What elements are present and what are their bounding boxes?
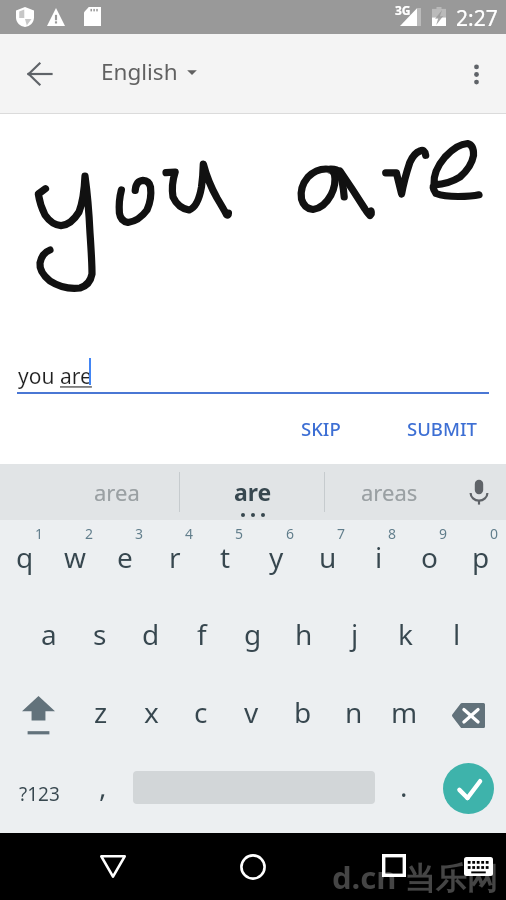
staticText: , (99, 767, 107, 805)
staticText: v (244, 693, 259, 731)
staticText: w (64, 538, 87, 576)
button[interactable]: e (100, 520, 150, 598)
button[interactable]: Delete (430, 676, 506, 754)
button[interactable]: are (185, 464, 321, 520)
button[interactable]: x (126, 676, 176, 754)
staticText: h (295, 615, 313, 653)
staticText: area (94, 477, 140, 507)
staticText: 7 (337, 524, 346, 543)
button[interactable]: More options (452, 50, 500, 98)
staticText: 2:27 (456, 4, 498, 33)
button[interactable]: Home (230, 844, 275, 889)
staticText: 8 (388, 524, 397, 543)
button[interactable]: Back (90, 844, 135, 889)
button[interactable]: v (226, 676, 277, 754)
button[interactable]: Recent apps (371, 843, 416, 888)
button[interactable]: , (76, 754, 130, 833)
staticText: p (472, 538, 490, 576)
button[interactable]: l (431, 598, 482, 676)
staticText: you (18, 362, 60, 391)
staticText: areas (361, 477, 418, 507)
staticText: 5 (235, 524, 244, 543)
staticText: SUBMIT (407, 416, 477, 441)
staticText: . (400, 767, 408, 805)
button[interactable]: b (277, 676, 328, 754)
staticText: d.cn 当乐网 (332, 856, 498, 898)
button[interactable]: k (380, 598, 431, 676)
staticText: s (93, 615, 107, 653)
button[interactable]: t (200, 520, 251, 598)
staticText: g (244, 615, 262, 653)
staticText: f (197, 615, 207, 653)
button[interactable]: areas (321, 464, 457, 520)
staticText: z (94, 693, 108, 731)
button[interactable]: Navigate up (15, 49, 64, 98)
staticText: 9 (439, 524, 448, 543)
staticText: are (60, 362, 92, 391)
button[interactable]: w (50, 520, 100, 598)
staticText: i (375, 538, 383, 576)
staticText: 0 (490, 524, 499, 543)
button[interactable]: . (378, 754, 430, 833)
button[interactable]: area (49, 464, 185, 520)
staticText: SKIP (301, 416, 341, 441)
button[interactable]: SKIP (285, 406, 357, 451)
button[interactable]: g (227, 598, 278, 676)
button[interactable]: p (455, 520, 506, 598)
button[interactable]: ?123 (8, 754, 70, 833)
staticText: u (319, 538, 337, 576)
staticText: l (453, 615, 461, 653)
button[interactable]: Voice input (452, 464, 506, 520)
staticText: r (169, 538, 181, 576)
staticText: m (391, 693, 418, 731)
button[interactable]: u (302, 520, 353, 598)
button[interactable]: q (0, 520, 50, 598)
button[interactable]: Enter (443, 763, 494, 814)
button[interactable]: f (176, 598, 227, 676)
staticText: j (351, 615, 359, 653)
staticText: 3G (395, 2, 411, 18)
staticText: b (294, 693, 312, 731)
button[interactable]: s (74, 598, 125, 676)
staticText: 3 (135, 524, 144, 543)
button[interactable]: a (24, 598, 74, 676)
staticText: e (117, 538, 133, 576)
button[interactable]: Shift (0, 676, 76, 754)
button[interactable]: r (150, 520, 200, 598)
button[interactable]: m (379, 676, 430, 754)
staticText: x (144, 693, 159, 731)
staticText: n (345, 693, 363, 731)
staticText: 1 (35, 524, 44, 543)
button[interactable]: h (278, 598, 329, 676)
staticText: are (234, 476, 272, 507)
button[interactable]: i (353, 520, 404, 598)
button[interactable]: j (329, 598, 380, 676)
staticText: c (194, 693, 208, 731)
button[interactable]: Change keyboard (458, 845, 499, 887)
staticText: t (220, 538, 231, 576)
button[interactable]: c (176, 676, 226, 754)
staticText: o (421, 538, 438, 576)
staticText: 2 (85, 524, 94, 543)
staticText: q (16, 538, 34, 576)
staticText: k (398, 615, 413, 653)
staticText: ?123 (19, 781, 60, 807)
button[interactable]: n (328, 676, 379, 754)
button[interactable]: English (101, 52, 205, 91)
staticText: 4 (185, 524, 194, 543)
staticText: d (142, 615, 160, 653)
button[interactable]: o (404, 520, 455, 598)
button[interactable]: y (251, 520, 302, 598)
button[interactable]: d (125, 598, 176, 676)
staticText: English (101, 56, 178, 87)
staticText: 6 (286, 524, 295, 543)
staticText: y (269, 538, 284, 576)
button[interactable]: z (76, 676, 126, 754)
button[interactable]: SUBMIT (391, 406, 493, 451)
staticText: a (41, 615, 57, 653)
